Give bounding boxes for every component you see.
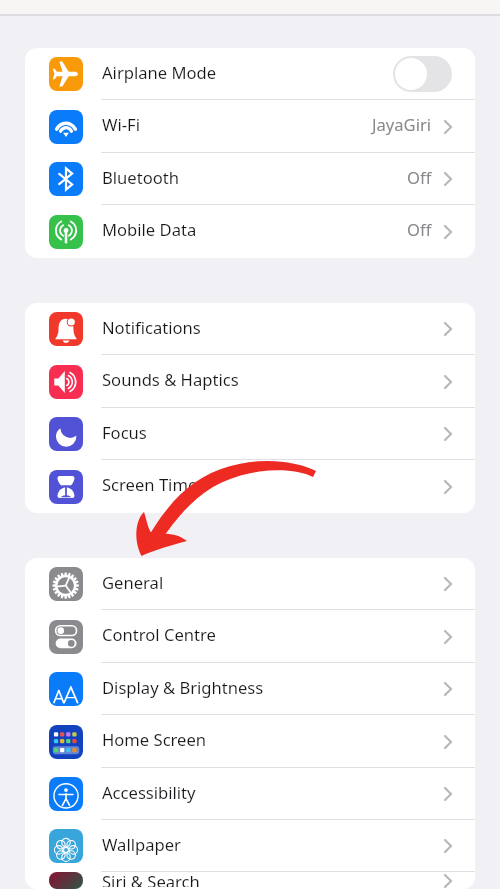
staticText: Home Screen — [102, 728, 207, 751]
staticText: JayaGiri — [372, 113, 432, 136]
staticText: Mobile Data — [102, 218, 197, 241]
button[interactable]: General — [25, 558, 475, 610]
button[interactable] — [393, 56, 452, 92]
staticText: Off — [407, 166, 432, 189]
button[interactable]: Accessibility — [25, 768, 475, 820]
button[interactable]: Sounds & Haptics — [25, 355, 475, 408]
button[interactable]: Home Screen — [25, 715, 475, 768]
button[interactable]: Wi-Fi — [25, 100, 475, 153]
button[interactable]: Airplane Mode — [25, 48, 475, 100]
button[interactable]: Control Centre — [25, 610, 475, 663]
staticText: Focus — [102, 421, 147, 444]
button[interactable]: Bluetooth — [25, 153, 475, 205]
staticText: Off — [407, 218, 432, 241]
staticText: Siri & Search — [102, 870, 200, 887]
staticText: Accessibility — [102, 781, 196, 804]
staticText: General — [102, 571, 164, 594]
staticText: Display & Brightness — [102, 676, 264, 699]
button[interactable]: Mobile Data — [25, 205, 475, 258]
button[interactable]: Notifications — [25, 303, 475, 355]
staticText: Wi-Fi — [102, 113, 140, 136]
button[interactable]: Screen Time — [25, 460, 475, 513]
button[interactable]: Wallpaper — [25, 820, 475, 872]
staticText: Screen Time — [102, 473, 198, 496]
staticText: Sounds & Haptics — [102, 368, 239, 391]
button[interactable]: Siri & Search — [25, 872, 475, 889]
other: Annotation arrow — [0, 0, 500, 889]
button[interactable]: Focus — [25, 408, 475, 460]
staticText: Control Centre — [102, 623, 216, 646]
staticText: Notifications — [102, 316, 201, 339]
staticText: Wallpaper — [102, 833, 181, 856]
staticText: Bluetooth — [102, 166, 179, 189]
button[interactable]: Display & Brightness — [25, 663, 475, 715]
staticText: Airplane Mode — [102, 61, 217, 84]
